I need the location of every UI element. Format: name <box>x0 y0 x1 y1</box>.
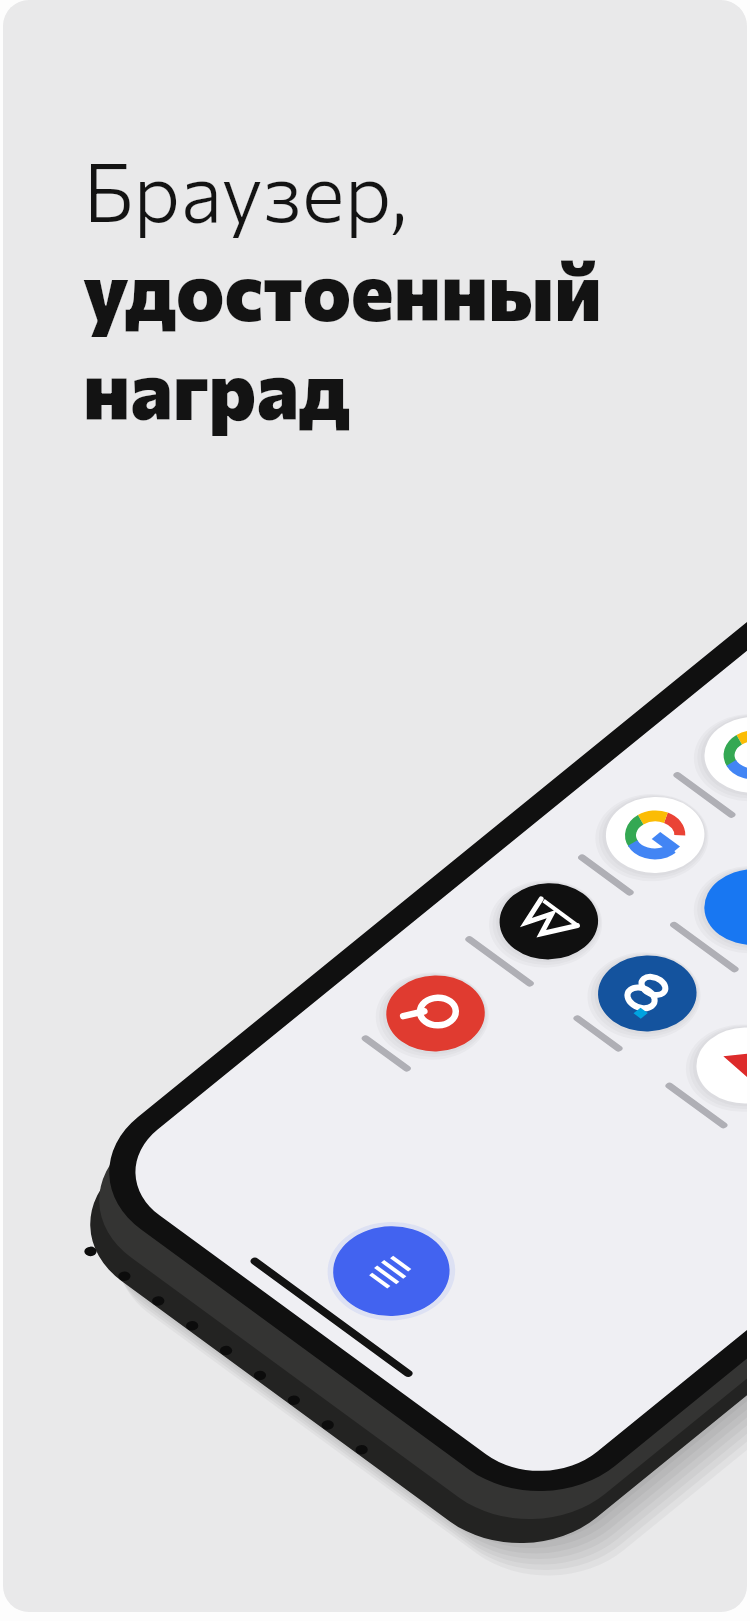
button[interactable]: Phone showing the browser start page <box>3 0 747 1612</box>
staticText: наград <box>83 338 351 437</box>
staticText: удостоенный <box>83 239 602 338</box>
other: Phone showing the browser start page <box>3 0 747 1612</box>
staticText: Браузер, <box>83 140 408 239</box>
